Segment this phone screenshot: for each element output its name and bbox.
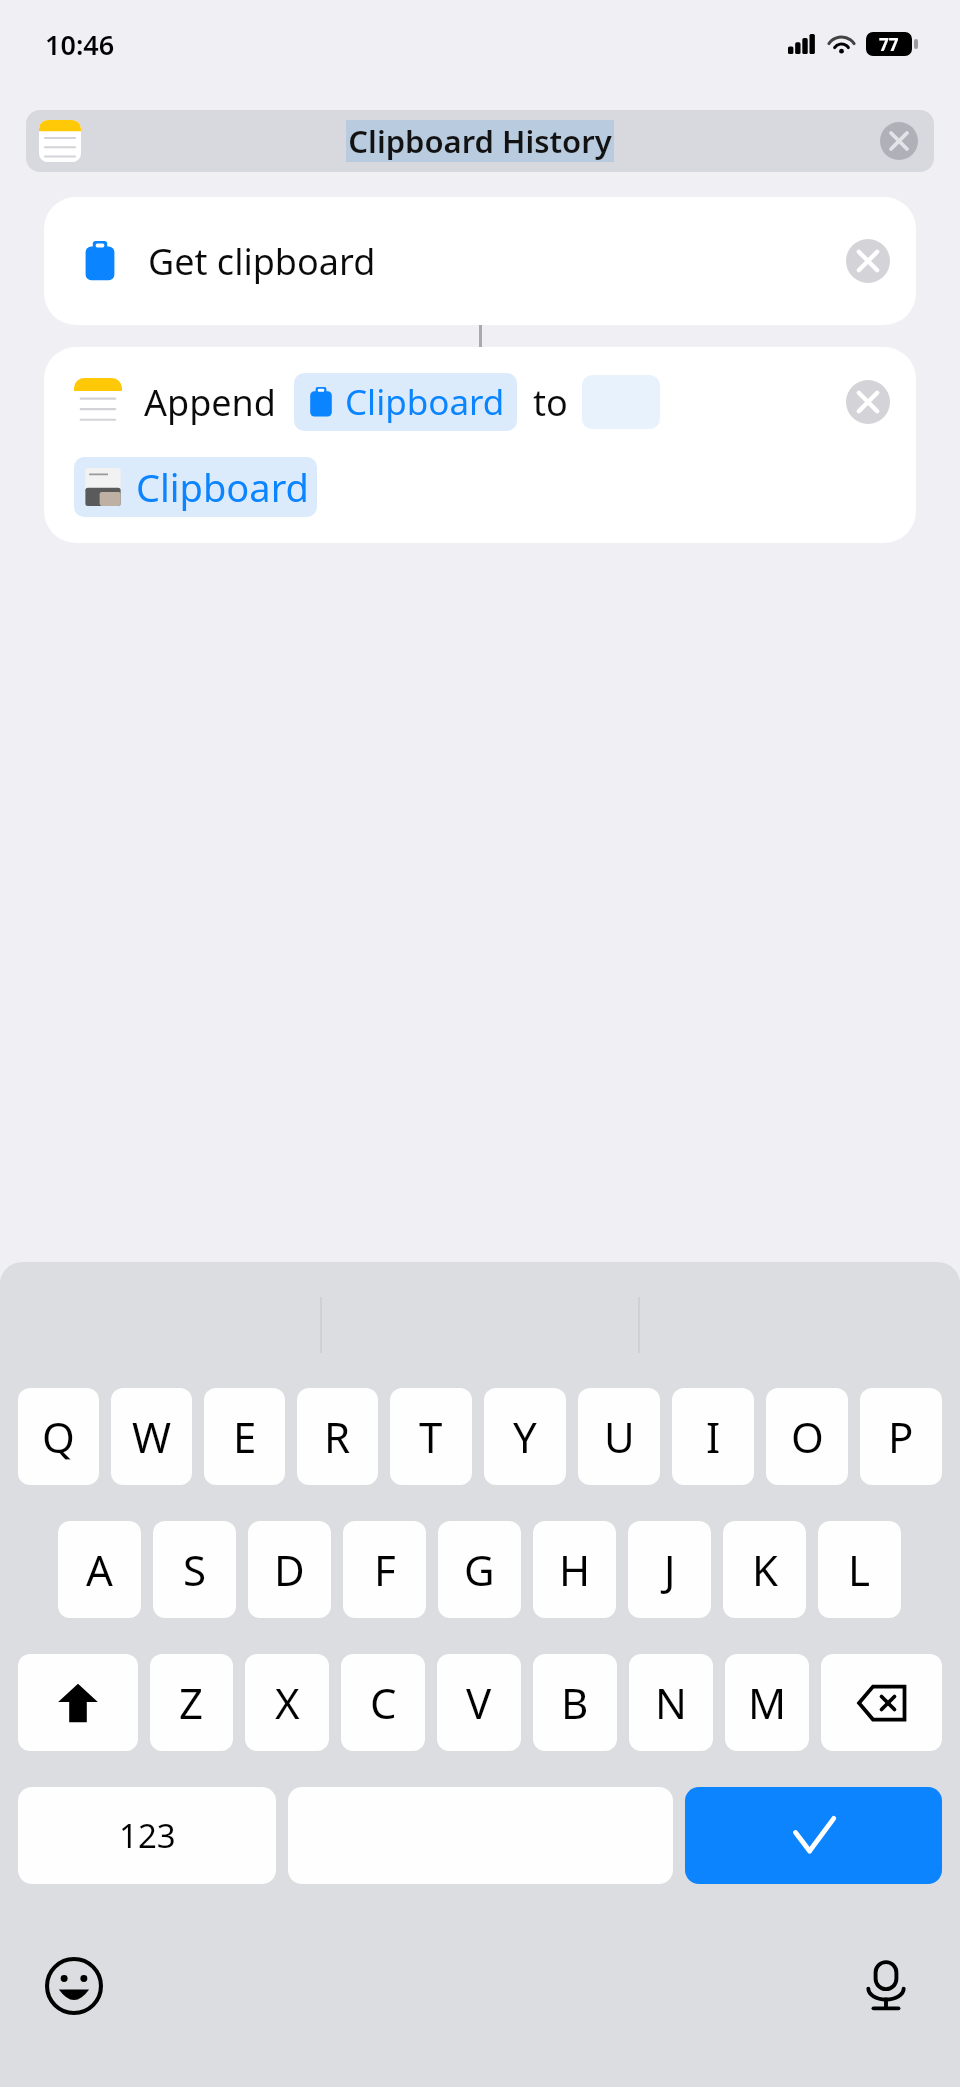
staticText: I: [706, 1408, 721, 1465]
button[interactable]: Clipboard: [82, 461, 309, 513]
button[interactable]: V: [437, 1654, 521, 1751]
staticText: Z: [179, 1674, 204, 1731]
button[interactable]: K: [723, 1521, 806, 1618]
staticText: H: [559, 1541, 591, 1598]
staticText: R: [324, 1408, 351, 1465]
button[interactable]: N: [629, 1654, 713, 1751]
staticText: Get clipboard: [148, 237, 376, 286]
staticText: C: [370, 1674, 397, 1731]
button[interactable]: H: [533, 1521, 616, 1618]
button[interactable]: B: [533, 1654, 617, 1751]
button[interactable]: F: [343, 1521, 426, 1618]
button[interactable]: Z: [150, 1654, 233, 1751]
button[interactable]: E: [204, 1388, 285, 1485]
button[interactable]: Append: [44, 347, 916, 543]
staticText: L: [848, 1541, 871, 1598]
button[interactable]: Clipboard: [306, 378, 505, 426]
button[interactable]: W: [111, 1388, 192, 1485]
button[interactable]: Clear name: [878, 120, 920, 162]
button[interactable]: Dictation: [850, 1950, 922, 2022]
staticText: 10:46: [45, 26, 115, 63]
button[interactable]: A: [58, 1521, 141, 1618]
button[interactable]: Remove action: [844, 378, 892, 426]
staticText: Clipboard: [136, 461, 309, 513]
button[interactable]: U: [578, 1388, 660, 1485]
staticText: 77: [879, 33, 899, 56]
button[interactable]: Remove action: [844, 237, 892, 285]
button[interactable]: I: [672, 1388, 754, 1485]
staticText: G: [464, 1541, 495, 1598]
staticText: M: [748, 1674, 787, 1731]
button[interactable]: D: [248, 1521, 331, 1618]
button[interactable]: P: [860, 1388, 942, 1485]
staticText: Y: [513, 1408, 537, 1465]
button[interactable]: X: [245, 1654, 329, 1751]
button[interactable]: Y: [484, 1388, 566, 1485]
staticText: P: [888, 1408, 914, 1465]
staticText: T: [419, 1408, 443, 1465]
staticText: Append: [144, 378, 276, 427]
staticText: Clipboard History: [348, 120, 612, 162]
button[interactable]: Q: [18, 1388, 99, 1485]
staticText: X: [275, 1674, 300, 1731]
staticText: E: [233, 1408, 257, 1465]
button[interactable]: Get clipboard: [44, 197, 916, 325]
staticText: D: [274, 1541, 305, 1598]
staticText: Clipboard: [345, 378, 505, 426]
button[interactable]: Done: [685, 1787, 942, 1884]
staticText: K: [752, 1541, 778, 1598]
button[interactable]: Backspace: [821, 1654, 942, 1751]
staticText: 123: [119, 1813, 176, 1858]
button[interactable]: C: [341, 1654, 425, 1751]
button[interactable]: Clipboard History: [26, 110, 934, 172]
staticText: Q: [42, 1408, 75, 1465]
button[interactable]: Emoji: [38, 1950, 110, 2022]
button[interactable]: O: [766, 1388, 848, 1485]
button[interactable]: R: [297, 1388, 378, 1485]
button[interactable]: G: [438, 1521, 521, 1618]
staticText: N: [655, 1674, 687, 1731]
button[interactable]: 123: [18, 1787, 276, 1884]
staticText: F: [374, 1541, 396, 1598]
staticText: A: [86, 1541, 113, 1598]
staticText: V: [466, 1674, 492, 1731]
button[interactable]: Shift: [18, 1654, 138, 1751]
staticText: J: [664, 1541, 676, 1598]
button[interactable]: J: [628, 1521, 711, 1618]
staticText: to: [533, 378, 568, 427]
staticText: B: [561, 1674, 589, 1731]
staticText: O: [791, 1408, 824, 1465]
button[interactable]: S: [153, 1521, 236, 1618]
button[interactable]: T: [390, 1388, 472, 1485]
button[interactable]: [582, 375, 660, 429]
button[interactable]: L: [818, 1521, 901, 1618]
button[interactable]: M: [725, 1654, 809, 1751]
staticText: W: [132, 1408, 172, 1465]
staticText: S: [183, 1541, 207, 1598]
staticText: U: [604, 1408, 635, 1465]
